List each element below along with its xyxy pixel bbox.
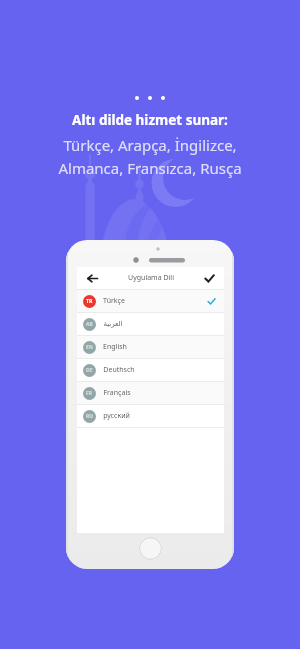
staticText: Deuthsch [103, 365, 135, 375]
staticText: DE [86, 367, 93, 374]
button[interactable]: Home [139, 537, 162, 560]
button[interactable]: FR [77, 382, 224, 404]
staticText: Türkçe, Arapça, İngilizce, [63, 135, 237, 155]
staticText: русский [103, 411, 130, 421]
button[interactable]: AR [77, 313, 224, 335]
staticText: AR [86, 321, 93, 328]
staticText: Almanca, Fransızca, Rusça [58, 158, 242, 178]
staticText: English [103, 342, 127, 352]
button[interactable]: RU [77, 405, 224, 427]
staticText: Altı dilde hizmet sunar: [72, 111, 228, 129]
staticText: TR [86, 298, 93, 305]
staticText: Türkçe [103, 296, 125, 306]
staticText: Uygulama Dili [128, 273, 174, 283]
staticText: FR [86, 390, 93, 397]
staticText: RU [86, 413, 94, 420]
button[interactable]: TR [77, 290, 224, 312]
staticText: Français [103, 388, 131, 398]
button[interactable]: DE [77, 359, 224, 381]
staticText: EN [86, 344, 93, 351]
button[interactable]: EN [77, 336, 224, 358]
button[interactable]: Back [84, 270, 100, 286]
button[interactable]: Confirm [201, 270, 217, 286]
staticText: العربية [103, 320, 123, 328]
